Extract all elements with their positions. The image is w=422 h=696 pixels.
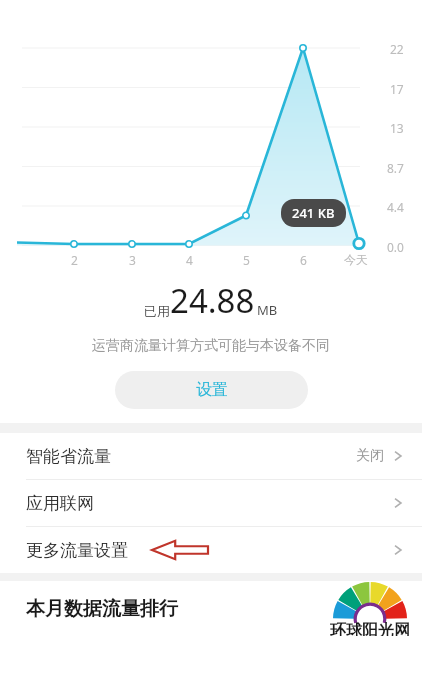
staticText: 关闭 (356, 447, 384, 465)
staticText: 241 KB (292, 204, 335, 222)
staticText: 0.0 (387, 239, 404, 255)
staticText: 8.7 (387, 160, 404, 176)
staticText: 环球阳光网 (330, 621, 410, 636)
staticText: 本月数据流量排行 (26, 597, 178, 621)
staticText: 运营商流量计算方式可能与本设备不同 (92, 337, 330, 355)
staticText: 13 (390, 120, 404, 136)
staticText: 6 (300, 252, 307, 268)
button[interactable]: 智能省流量 (0, 433, 422, 479)
staticText: 4 (186, 252, 193, 268)
staticText: 5 (243, 252, 250, 268)
staticText: 应用联网 (26, 493, 94, 514)
staticText: 17 (390, 81, 404, 97)
button[interactable]: 设置 (115, 371, 308, 409)
button[interactable]: 更多流量设置 (0, 527, 422, 573)
staticText: 智能省流量 (26, 446, 111, 467)
staticText: MB (257, 301, 278, 319)
staticText: 24.88 (170, 278, 255, 323)
button[interactable]: 应用联网 (0, 480, 422, 526)
staticText: 设置 (196, 380, 228, 400)
staticText: 更多流量设置 (26, 540, 128, 561)
staticText: 22 (390, 41, 404, 57)
staticText: 2 (71, 252, 78, 268)
staticText: 3 (129, 252, 136, 268)
staticText: 已用 (144, 303, 170, 319)
staticText: 4.4 (387, 199, 404, 215)
staticText: 今天 (344, 252, 368, 267)
